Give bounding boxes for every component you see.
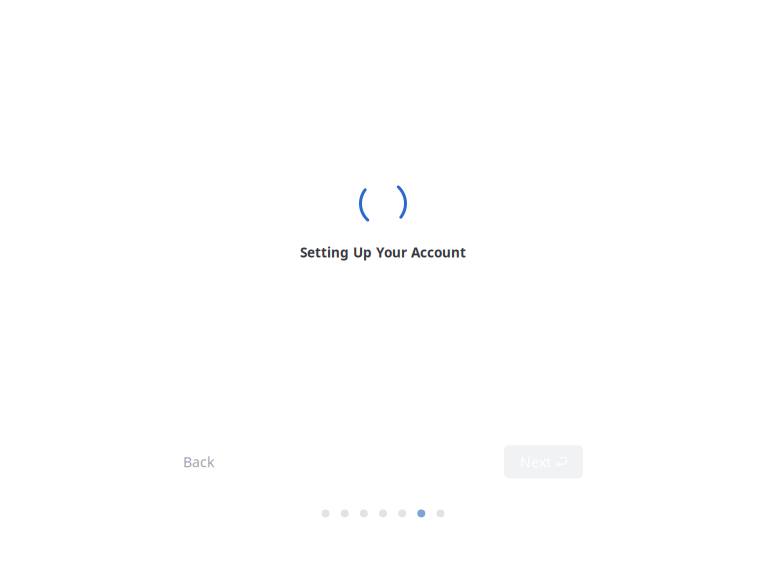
button[interactable]: Back — [169, 442, 228, 481]
staticText: Back — [183, 452, 214, 471]
staticText: Setting Up Your Account — [300, 243, 466, 261]
staticText: Next — [520, 452, 551, 471]
